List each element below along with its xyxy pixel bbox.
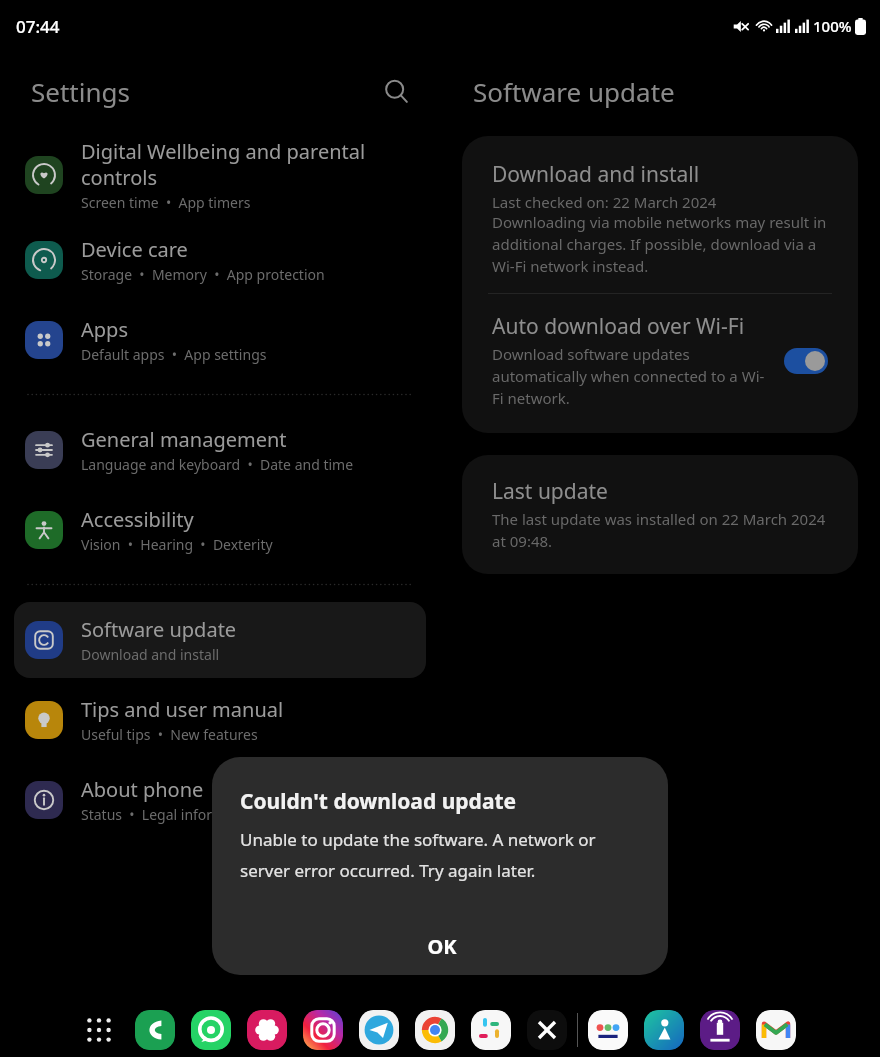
button[interactable]: Instagram [303,1010,343,1050]
staticText: Software update [473,74,675,109]
staticText: Useful tips • New features [81,725,258,744]
button[interactable]: Last update [462,455,858,574]
staticText: About phone [81,776,204,803]
button[interactable]: Apps [79,1010,119,1050]
staticText: Settings [31,74,130,109]
staticText: Download and install [81,645,220,664]
staticText: Device care [81,236,188,263]
staticText: Storage • Memory • App protection [81,265,325,284]
staticText: General management [81,426,287,453]
button[interactable]: Software update [14,602,426,678]
staticText: OK [427,933,457,960]
staticText: Couldn't download update [240,787,517,816]
button[interactable]: Auto download over Wi-Fi toggle [784,348,828,374]
button[interactable]: Download and install [462,156,858,281]
staticText: Auto download over Wi-Fi [492,312,745,341]
button[interactable]: Gallery [247,1010,287,1050]
button[interactable]: Telegram [359,1010,399,1050]
staticText: Language and keyboard • Date and time [81,455,354,474]
staticText: 07:44 [16,15,60,38]
button[interactable]: OK [399,925,485,968]
button[interactable]: Auto download over Wi-Fi [462,308,858,413]
button[interactable]: About phone [14,762,426,838]
staticText: Downloading via mobile networks may resu… [492,212,828,277]
button[interactable]: Gmail [756,1010,796,1050]
staticText: Screen time • App timers [81,193,251,212]
button[interactable]: WhatsApp [191,1010,231,1050]
button[interactable]: Maps [644,1010,684,1050]
staticText: Digital Wellbeing and parental controls [81,138,366,191]
staticText: Download and install [492,160,700,189]
staticText: Last update [492,477,608,506]
button[interactable]: Apps [14,302,426,378]
staticText: 100% [813,16,852,36]
button[interactable]: Avent [700,1010,740,1050]
staticText: Download software updates automatically … [492,344,774,409]
button[interactable]: Hue [588,1010,628,1050]
staticText: Vision • Hearing • Dexterity [81,535,273,554]
staticText: Software update [81,616,237,643]
button[interactable]: Device care [14,222,426,298]
button[interactable]: Accessibility [14,492,426,568]
staticText: Accessibility [81,506,194,533]
button[interactable]: Slack [471,1010,511,1050]
staticText: The last update was installed on 22 Marc… [492,509,828,552]
staticText: Unable to update the software. A network… [240,828,644,882]
staticText: Default apps • App settings [81,345,267,364]
button[interactable]: Phone [135,1010,175,1050]
button[interactable]: Chrome [415,1010,455,1050]
staticText: Tips and user manual [81,696,284,723]
staticText: Last checked on: 22 March 2024 [492,192,717,212]
button[interactable]: General management [14,412,426,488]
staticText: Apps [81,316,128,343]
button[interactable]: Tips and user manual [14,682,426,758]
staticText: Status • Legal information [81,805,259,824]
button[interactable]: Search [376,71,416,111]
button[interactable]: Digital Wellbeing and parental controls [14,132,426,218]
button[interactable]: X [527,1010,567,1050]
